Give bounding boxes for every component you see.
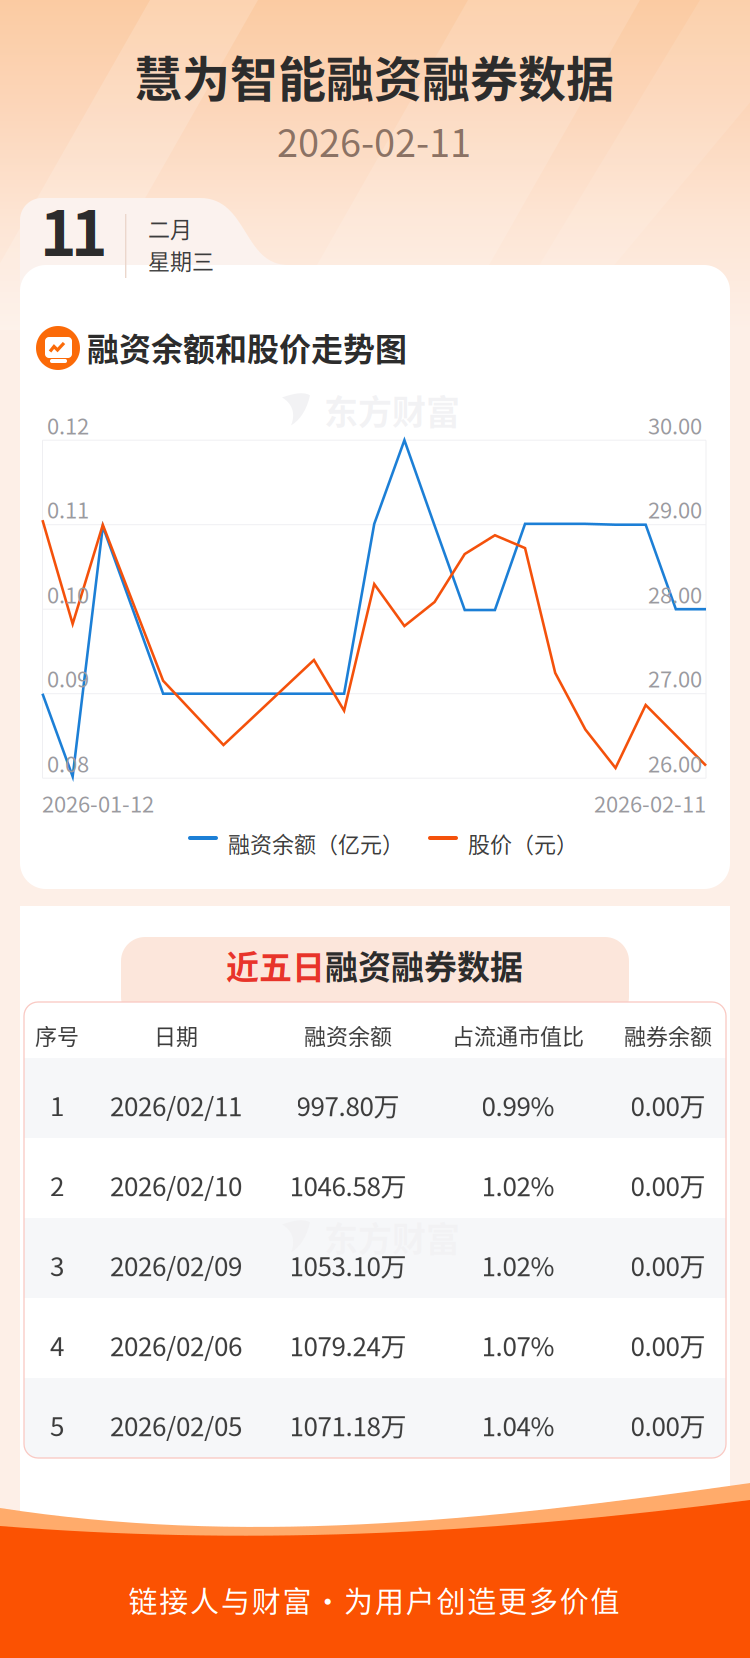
staticText: 2026/02/10 (110, 1166, 242, 1204)
staticText: 4 (50, 1326, 64, 1364)
staticText: 近五日 (226, 941, 325, 989)
staticText: 二月 (148, 212, 192, 244)
staticText: 11 (40, 184, 108, 274)
staticText: 28.00 (648, 578, 702, 610)
staticText: 1046.58万 (289, 1166, 406, 1204)
staticText: 0.09 (47, 662, 89, 694)
staticText: 29.00 (648, 493, 702, 525)
staticText: 融资余额和股价走势图 (87, 324, 407, 370)
staticText: 融券余额 (624, 1019, 712, 1051)
staticText: 1.07% (481, 1326, 554, 1364)
staticText: 30.00 (648, 409, 702, 441)
staticText: 东方财富 (324, 1212, 460, 1262)
staticText: 0.00万 (630, 1086, 705, 1124)
staticText: 股价（元） (468, 827, 578, 859)
staticText: 日期 (154, 1019, 198, 1051)
staticText: 26.00 (648, 747, 702, 779)
staticText: 0.12 (47, 409, 89, 441)
staticText: 2026-01-12 (42, 787, 154, 819)
staticText: 0.11 (47, 493, 89, 525)
staticText: 3 (50, 1246, 64, 1284)
staticText: 27.00 (648, 662, 702, 694)
staticText: 2026/02/05 (110, 1406, 242, 1444)
staticText: 2026-02-11 (594, 787, 706, 819)
staticText: 融资余额 (304, 1019, 392, 1051)
staticText: 2026/02/09 (110, 1246, 242, 1284)
staticText: 0.10 (47, 578, 89, 610)
staticText: 0.00万 (630, 1246, 705, 1284)
staticText: 0.99% (481, 1086, 554, 1124)
staticText: 慧为智能融资融券数据 (134, 41, 614, 110)
staticText: 2026/02/11 (110, 1086, 242, 1124)
staticText: 东方财富 (324, 385, 460, 435)
staticText: 1.04% (481, 1406, 554, 1444)
staticText: 1.02% (481, 1246, 554, 1284)
staticText: 1.02% (481, 1166, 554, 1204)
staticText: 5 (50, 1406, 64, 1444)
staticText: 1 (50, 1086, 64, 1124)
staticText: 融资余额（亿元） (228, 827, 404, 859)
staticText: 1079.24万 (289, 1326, 406, 1364)
staticText: 1071.18万 (289, 1406, 406, 1444)
staticText: 占流通市值比 (452, 1019, 584, 1051)
staticText: 2026/02/06 (110, 1326, 242, 1364)
staticText: 0.00万 (630, 1166, 705, 1204)
staticText: 997.80万 (296, 1086, 399, 1124)
staticText: 序号 (35, 1019, 79, 1051)
staticText: 2026-02-11 (277, 113, 471, 168)
staticText: 链接人与财富·为用户创造更多价值 (128, 1579, 619, 1621)
staticText: 星期三 (148, 244, 214, 276)
staticText: 0.00万 (630, 1326, 705, 1364)
staticText: 1053.10万 (289, 1246, 406, 1284)
staticText: 0.08 (47, 747, 89, 779)
staticText: 2 (50, 1166, 64, 1204)
staticText: 0.00万 (630, 1406, 705, 1444)
staticText: 融资融券数据 (325, 941, 523, 989)
